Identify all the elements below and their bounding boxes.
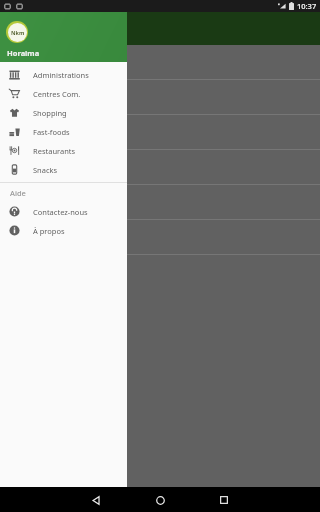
button[interactable]: Nkm [0, 12, 127, 62]
button[interactable]: Snacks [0, 160, 127, 179]
staticText: Fast-foods [33, 127, 70, 137]
button[interactable]: Recents [216, 492, 232, 508]
button[interactable]: Fast-foods [0, 122, 127, 141]
button[interactable]: Restaurants [0, 141, 127, 160]
staticText: Contactez-nous [33, 207, 88, 217]
staticText: Centres Com. [33, 89, 81, 99]
staticText: Nkm [11, 29, 25, 36]
button[interactable]: Administrations [0, 65, 127, 84]
button[interactable]: Contactez-nous [0, 202, 127, 221]
button[interactable]: Home [152, 492, 168, 508]
staticText: 10:37 [297, 1, 317, 11]
staticText: Restaurants [33, 146, 76, 156]
staticText: Administrations [33, 70, 89, 80]
staticText: À propos [33, 226, 65, 236]
button[interactable]: Back [88, 492, 104, 508]
staticText: Shopping [33, 108, 67, 118]
staticText: Aide [10, 188, 26, 198]
button[interactable]: Centres Com. [0, 84, 127, 103]
staticText: Snacks [33, 165, 58, 175]
button[interactable]: À propos [0, 221, 127, 240]
button[interactable]: Shopping [0, 103, 127, 122]
staticText: Horaima [7, 48, 40, 58]
